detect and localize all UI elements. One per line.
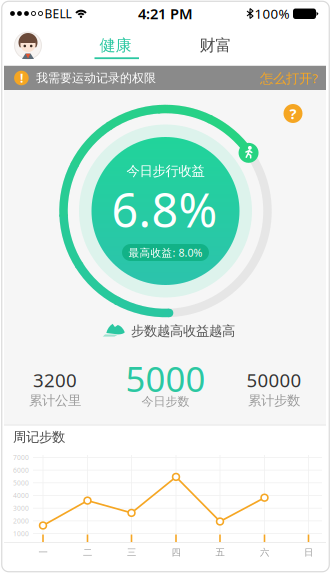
staticText: 三 [127,547,136,558]
staticText: 最高收益: 8.0% [128,245,202,260]
staticText: 5000 [125,355,205,401]
staticText: 4:21 PM [138,4,193,23]
staticText: 四 [171,547,180,558]
staticText: 今日步行收益 [126,163,204,179]
staticText: 1000 [13,529,29,538]
staticText: 3000 [13,504,29,513]
staticText: 累计公里 [29,392,81,409]
staticText: 5000 [13,478,29,487]
staticText: 日 [304,547,313,558]
staticText: 六 [260,547,269,558]
staticText: 一 [38,547,47,558]
staticText: 100% [254,5,289,22]
staticText: 健康 [99,36,131,55]
button[interactable]: Help [283,104,302,123]
staticText: 3200 [33,368,77,392]
staticText: 怎么打开? [260,69,318,87]
button[interactable]: 怎么打开? [260,69,318,87]
staticText: 步数越高收益越高 [131,323,235,339]
staticText: 财富 [199,36,231,55]
staticText: ! [20,70,23,86]
staticText: 五 [215,547,224,558]
staticText: 6.8% [111,178,217,240]
staticText: 4000 [13,491,29,500]
button[interactable]: Profile [0,0,56,70]
button[interactable]: 财富 [175,30,255,60]
staticText: 今日步数 [141,394,189,409]
staticText: BELL [44,5,71,21]
staticText: ? [289,104,296,123]
staticText: 2000 [13,516,29,525]
button[interactable]: 健康 [75,30,155,60]
staticText: 50000 [246,368,301,392]
staticText: 7000 [13,453,29,462]
staticText: 二 [83,547,92,558]
staticText: 6000 [13,466,29,475]
staticText: 周记步数 [13,429,65,445]
staticText: 累计步数 [248,392,300,409]
staticText: 我需要运动记录的权限 [36,71,156,85]
